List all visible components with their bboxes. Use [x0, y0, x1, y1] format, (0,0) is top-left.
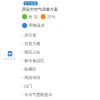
staticText: 西安市空气质量方案 [22, 7, 58, 12]
staticText: 周游市街 [24, 75, 40, 80]
staticText: 联播区 [24, 67, 36, 72]
staticText: 23 % [47, 14, 55, 19]
button[interactable]: 空气质量 [24, 1, 38, 5]
staticText: 查看详情 [4, 57, 16, 60]
staticText: 百货大楼 [24, 41, 40, 46]
button[interactable]: 查看详情 [4, 51, 16, 60]
staticText: 步行道 [24, 33, 36, 38]
staticText: 空气质量 [25, 2, 37, 5]
staticText: 便民人站 [24, 50, 40, 55]
staticText: 今日气度能提示 [24, 92, 52, 97]
staticText: 新冷食品区 [24, 58, 44, 63]
staticText: 出门 [24, 84, 32, 89]
staticText: 良 32 [28, 14, 37, 19]
staticText: 早晚温凉 [29, 23, 45, 28]
